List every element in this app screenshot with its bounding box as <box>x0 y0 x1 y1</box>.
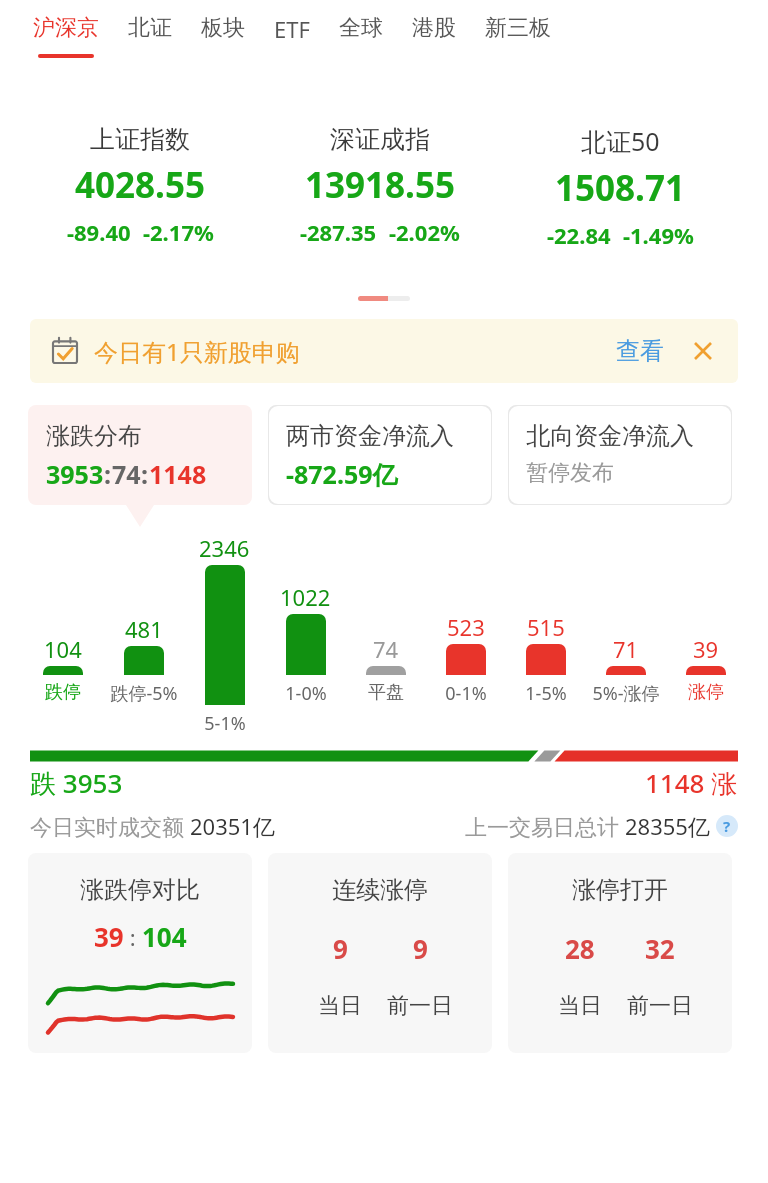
staticText: 9 <box>413 931 428 966</box>
staticText: 1022 <box>280 582 331 612</box>
staticText: 515 <box>527 612 565 642</box>
staticText: 0-1% <box>445 681 487 706</box>
button[interactable]: Help <box>716 815 738 837</box>
button[interactable]: Close <box>688 336 718 366</box>
staticText: : <box>141 457 149 491</box>
button[interactable]: 新三板 <box>485 14 551 54</box>
staticText: 今日实时成交额 <box>30 811 190 841</box>
button[interactable]: 沪深京 <box>33 14 99 58</box>
button[interactable]: 涨停打开 <box>508 853 732 1053</box>
staticText: 104 <box>44 634 82 664</box>
staticText: : <box>124 922 142 952</box>
staticText: 13918.55 <box>305 161 455 209</box>
staticText: 北证 <box>128 14 172 42</box>
staticText: 跌 3953 <box>30 765 123 801</box>
button[interactable]: 北证 <box>128 14 172 54</box>
button[interactable]: 港股 <box>412 14 456 54</box>
button[interactable]: 北向资金净流入 <box>508 405 732 505</box>
staticText: -872.59亿 <box>286 457 398 491</box>
staticText: -287.35 <box>300 217 377 247</box>
button[interactable]: 全球 <box>339 14 383 54</box>
button[interactable]: 涨跌停对比 <box>28 853 252 1053</box>
staticText: 涨跌停对比 <box>80 875 200 905</box>
staticText: ? <box>723 816 731 836</box>
staticText: -2.02% <box>389 217 460 247</box>
staticText: 5-1% <box>204 711 246 736</box>
staticText: 跌停-5% <box>110 681 178 706</box>
button[interactable]: 涨跌分布 <box>28 405 252 505</box>
staticText: 前一日 <box>627 992 693 1020</box>
staticText: 20351亿 <box>190 811 275 841</box>
staticText: 28355亿 <box>625 811 710 841</box>
staticText: 1-0% <box>285 681 327 706</box>
staticText: 3953 <box>46 457 104 491</box>
button[interactable]: 今日有1只新股申购 <box>30 319 738 383</box>
staticText: 1508.71 <box>555 164 685 212</box>
staticText: 跌停 <box>45 681 81 704</box>
staticText: 39 <box>94 919 124 954</box>
staticText: -22.84 <box>547 220 611 250</box>
staticText: 32 <box>645 931 675 966</box>
staticText: 北向资金净流入 <box>526 421 694 451</box>
staticText: 4028.55 <box>75 161 205 209</box>
staticText: 当日 <box>558 992 602 1020</box>
staticText: : <box>104 457 112 491</box>
staticText: -1.49% <box>623 220 694 250</box>
staticText: -89.40 <box>67 217 131 247</box>
staticText: 1148 涨 <box>645 765 738 801</box>
staticText: 481 <box>125 614 163 644</box>
button[interactable]: 两市资金净流入 <box>268 405 492 505</box>
staticText: -2.17% <box>143 217 214 247</box>
staticText: 港股 <box>412 14 456 42</box>
staticText: 2346 <box>199 533 250 563</box>
staticText: 1148 <box>149 457 207 491</box>
staticText: 9 <box>333 931 348 966</box>
staticText: 北证50 <box>581 124 660 158</box>
staticText: 28 <box>565 931 595 966</box>
button[interactable]: 查看 <box>616 336 664 366</box>
staticText: 当日 <box>318 992 362 1020</box>
staticText: 涨停打开 <box>572 875 668 905</box>
staticText: 39 <box>693 634 719 664</box>
staticText: 暂停发布 <box>526 459 614 487</box>
staticText: 71 <box>613 634 639 664</box>
staticText: ETF <box>274 14 310 44</box>
staticText: 沪深京 <box>33 14 99 42</box>
button[interactable]: ETF <box>274 14 310 56</box>
button[interactable]: 上证指数 <box>28 100 252 286</box>
staticText: 上一交易日总计 <box>465 811 625 841</box>
staticText: 5%-涨停 <box>592 681 660 706</box>
staticText: 前一日 <box>387 992 453 1020</box>
staticText: 深证成指 <box>330 124 430 155</box>
staticText: 查看 <box>616 336 664 366</box>
staticText: 两市资金净流入 <box>286 421 454 451</box>
staticText: 74 <box>373 634 399 664</box>
button[interactable]: 深证成指 <box>268 100 492 286</box>
staticText: 上证指数 <box>90 124 190 155</box>
staticText: 涨跌分布 <box>46 421 142 451</box>
button[interactable]: 北证50 <box>508 100 732 286</box>
staticText: 连续涨停 <box>332 875 428 905</box>
staticText: 今日有1只新股申购 <box>94 335 300 368</box>
staticText: 74 <box>112 457 141 491</box>
staticText: 涨停 <box>688 681 724 704</box>
staticText: 平盘 <box>368 681 404 704</box>
staticText: 新三板 <box>485 14 551 42</box>
staticText: 104 <box>142 919 187 954</box>
button[interactable]: 板块 <box>201 14 245 54</box>
staticText: 板块 <box>201 14 245 42</box>
button[interactable]: 连续涨停 <box>268 853 492 1053</box>
staticText: 1-5% <box>525 681 567 706</box>
staticText: 523 <box>447 612 485 642</box>
staticText: 全球 <box>339 14 383 42</box>
